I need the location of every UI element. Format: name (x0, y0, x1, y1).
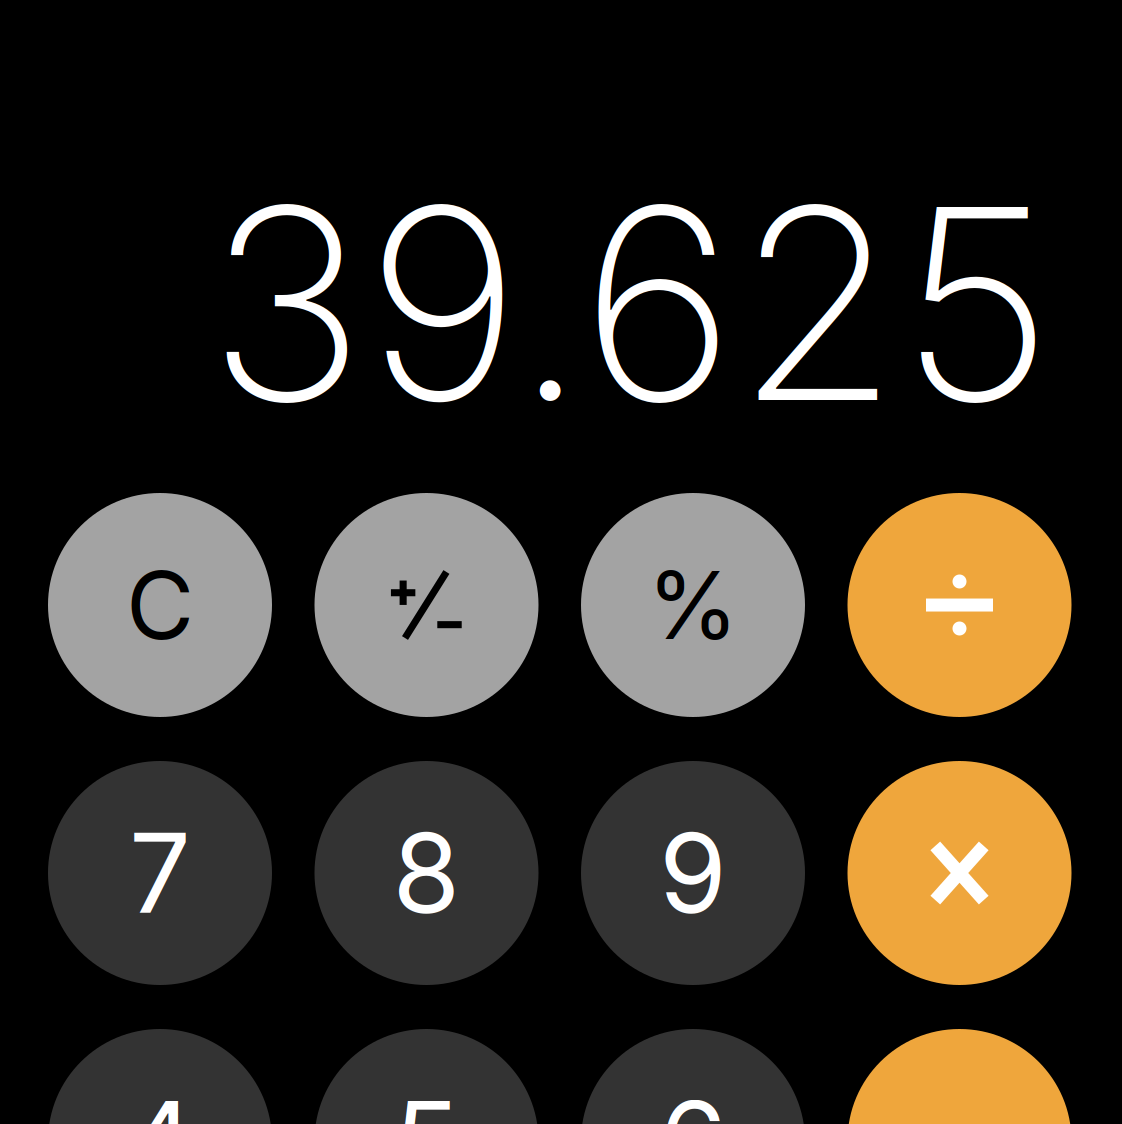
button[interactable]: 8 (314, 761, 538, 985)
staticText: 7 (129, 807, 191, 939)
staticText: 4 (124, 1075, 195, 1124)
staticText: 8 (392, 807, 460, 939)
button[interactable]: Minus (847, 1029, 1071, 1124)
button[interactable]: 5 (314, 1029, 538, 1124)
button[interactable]: Divide (847, 493, 1071, 717)
staticText: 6 (659, 1075, 727, 1124)
button[interactable]: Plus minus (314, 493, 538, 717)
button[interactable]: 7 (48, 761, 272, 985)
staticText: 39.625 (207, 143, 1052, 464)
staticText: C (126, 548, 194, 661)
button[interactable]: 9 (581, 761, 805, 985)
staticText: % (647, 548, 739, 661)
staticText: 9 (659, 807, 727, 939)
button[interactable]: 4 (48, 1029, 272, 1124)
button[interactable]: Clear (48, 493, 272, 717)
button[interactable]: Multiply (847, 761, 1071, 985)
button[interactable]: Percent (581, 493, 805, 717)
staticText: 5 (393, 1075, 459, 1124)
button[interactable]: 6 (581, 1029, 805, 1124)
